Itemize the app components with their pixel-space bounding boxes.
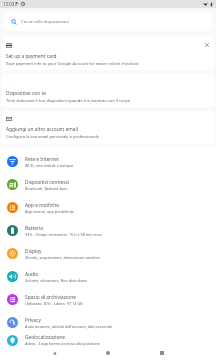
button[interactable]: Indietro	[44, 346, 64, 360]
staticText: Sfondo, sospensione, dimensione caratter…	[25, 255, 101, 260]
button[interactable]: Set up a payment card	[2, 37, 214, 70]
staticText: 94% - Tempo rimanente: 15 h e 58 min cir…	[25, 232, 102, 237]
button[interactable]: Privacy	[0, 311, 216, 334]
button[interactable]: Spazio di archiviazione	[0, 288, 216, 311]
staticText: Set up a payment card	[6, 53, 57, 60]
staticText: Volume, vibrazione, Non disturbare	[25, 278, 88, 283]
button[interactable]: App e notifiche	[0, 196, 216, 219]
button[interactable]: Geolocalizzazione	[0, 334, 216, 346]
staticText: Audio	[25, 271, 39, 278]
button[interactable]: Dispositivi connessi	[0, 173, 216, 196]
staticText: Utilizzato: 20% - Libero: 97,14 GB	[25, 301, 83, 306]
staticText: App recenti, app predefinite	[25, 209, 75, 214]
staticText: Geolocalizzazione	[25, 334, 65, 341]
staticText: Batteria	[25, 225, 43, 232]
staticText: Cerca nelle impostazioni	[21, 19, 69, 25]
staticText: Dispositivo con te	[6, 90, 46, 97]
button[interactable]: Rete e Internet	[0, 150, 216, 173]
staticText: Wi-Fi, rete mobile e hotspot	[25, 163, 74, 168]
button[interactable]: Home	[98, 346, 118, 360]
staticText: Save payment info to your Google Account…	[6, 61, 139, 67]
button[interactable]: Chiudi	[202, 40, 211, 49]
button[interactable]: Aggiungi un altro account email	[2, 111, 214, 144]
staticText: Rete e Internet	[25, 156, 59, 163]
staticText: Tieni sbloccato il tuo dispositivo quand…	[6, 98, 131, 104]
staticText: Dispositivi connessi	[25, 179, 69, 186]
button[interactable]: Display	[0, 242, 216, 265]
staticText: Bluetooth, Android Auto	[25, 186, 68, 191]
staticText: Aggiungi un altro account email	[6, 126, 78, 133]
staticText: App e notifiche	[25, 202, 59, 209]
staticText: 13:03	[3, 1, 15, 7]
button[interactable]: Batteria	[0, 219, 216, 242]
staticText: Display	[25, 248, 42, 255]
staticText: Autorizzazioni, attività dell'account, d…	[25, 324, 112, 329]
button[interactable]: Panoramica	[152, 346, 172, 360]
button[interactable]: Audio	[0, 265, 216, 288]
staticText: Attiva - 3 app hanno accesso alla posizi…	[25, 341, 100, 346]
staticText: Privacy	[25, 317, 41, 324]
staticText: Configura la tua email personale e profe…	[6, 134, 100, 140]
button[interactable]: Dispositivo con te	[2, 74, 214, 107]
staticText: Spazio di archiviazione	[25, 294, 76, 301]
button[interactable]: Cerca nelle impostazioni	[4, 12, 212, 31]
